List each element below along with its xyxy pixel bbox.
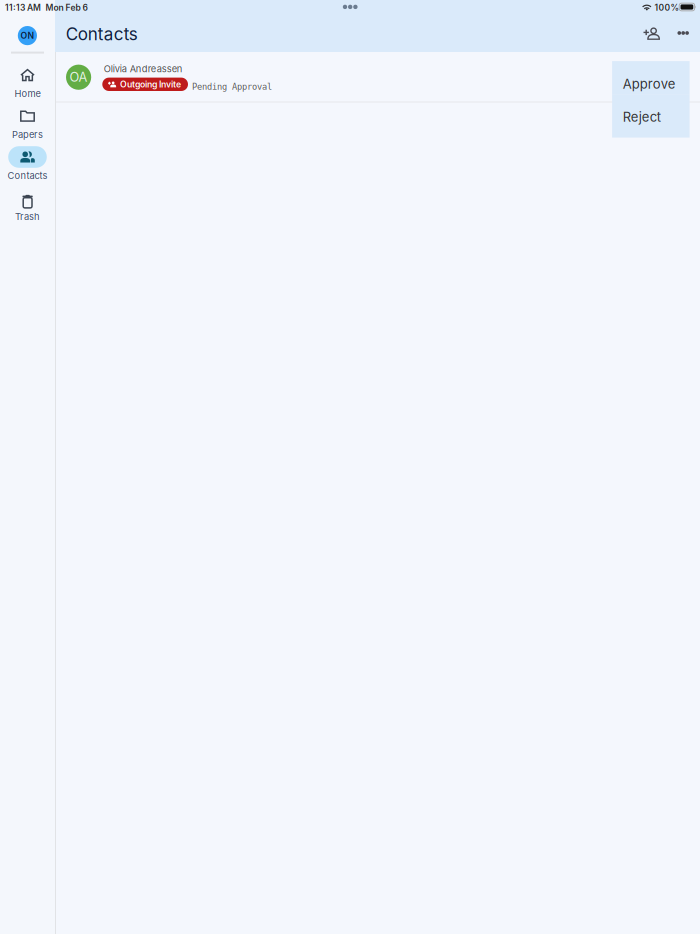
staticText: Trash [15,211,40,222]
staticText: Home [14,88,40,99]
staticText: Papers [12,129,43,140]
button[interactable]: Add contact [638,20,664,46]
staticText: OA [70,69,88,85]
button[interactable]: Approve [612,61,690,94]
button[interactable]: Reject [612,94,690,138]
staticText: ON [20,30,34,41]
button[interactable]: OA [55,52,700,101]
button[interactable]: Home [0,64,55,98]
staticText: Contacts [7,170,47,181]
button[interactable]: Account [15,24,39,48]
staticText: Approve [623,76,676,92]
staticText: 11:13 AM [5,2,41,13]
button[interactable]: Papers [0,105,55,139]
staticText: Pending Approval [192,82,272,92]
staticText: Mon Feb 6 [45,2,87,13]
staticText: Reject [623,109,661,125]
staticText: Olivia Andreassen [104,63,183,74]
staticText: 100% [654,2,679,13]
button[interactable]: Contacts [0,146,55,180]
button[interactable]: Trash [0,187,55,221]
staticText: Contacts [66,24,138,44]
button[interactable]: More options [670,20,696,46]
staticText: Outgoing Invite [120,79,181,90]
